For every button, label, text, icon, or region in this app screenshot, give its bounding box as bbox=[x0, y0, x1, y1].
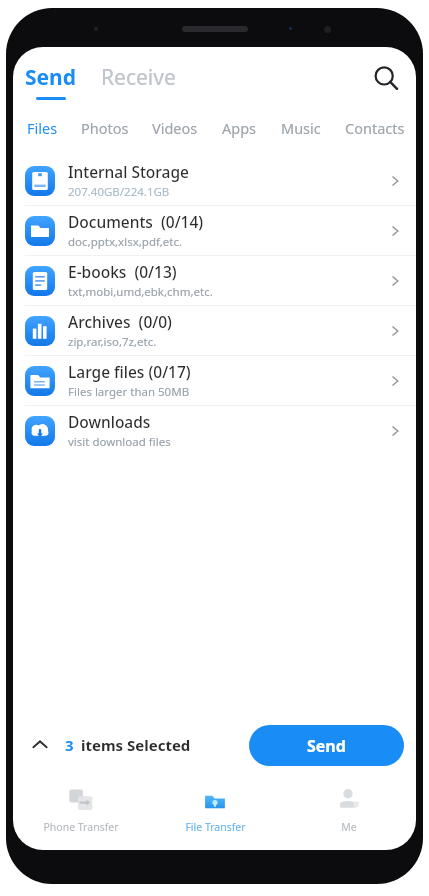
button[interactable]: Send bbox=[21, 61, 81, 102]
button[interactable]: Collapse bbox=[23, 728, 57, 762]
button[interactable]: Archives (0/0) bbox=[13, 306, 416, 356]
staticText: Me bbox=[341, 820, 357, 834]
staticText: txt,mobi,umd,ebk,chm,etc. bbox=[68, 284, 213, 300]
staticText: File Transfer bbox=[185, 820, 246, 834]
staticText: Videos bbox=[152, 118, 198, 138]
staticText: 3 bbox=[65, 735, 74, 755]
button[interactable]: Files bbox=[22, 114, 63, 142]
staticText: doc,pptx,xlsx,pdf,etc. bbox=[68, 234, 183, 250]
staticText: Apps bbox=[222, 118, 257, 138]
staticText: Photos bbox=[81, 118, 129, 138]
staticText: visit download files bbox=[68, 434, 171, 450]
staticText: Downloads bbox=[68, 411, 151, 432]
staticText: Phone Transfer bbox=[43, 820, 119, 834]
staticText: Large files (0/17) bbox=[68, 361, 191, 382]
button[interactable]: Videos bbox=[147, 114, 203, 142]
button[interactable]: Receive bbox=[97, 65, 180, 98]
staticText: Send bbox=[25, 63, 77, 92]
button[interactable]: Internal Storage bbox=[13, 156, 416, 206]
staticText: Receive bbox=[101, 63, 176, 92]
button[interactable]: Send bbox=[249, 725, 404, 766]
button[interactable]: Contacts bbox=[340, 114, 410, 142]
staticText: Files larger than 50MB bbox=[68, 384, 190, 400]
staticText: Internal Storage bbox=[68, 161, 189, 182]
button[interactable]: 3 bbox=[65, 731, 191, 759]
staticText: zip,rar,iso,7z,etc. bbox=[68, 334, 157, 350]
staticText: Documents (0/14) bbox=[68, 211, 204, 232]
button[interactable]: Search bbox=[366, 58, 406, 98]
staticText: 207.40GB/224.1GB bbox=[68, 184, 170, 200]
button[interactable]: Music bbox=[276, 114, 326, 142]
staticText: Music bbox=[281, 118, 321, 138]
staticText: E-books (0/13) bbox=[68, 261, 177, 282]
button[interactable]: File Transfer bbox=[148, 774, 282, 846]
staticText: Files bbox=[27, 118, 58, 138]
button[interactable]: Large files (0/17) bbox=[13, 356, 416, 406]
staticText: Contacts bbox=[345, 118, 405, 138]
button[interactable]: Phone Transfer bbox=[13, 774, 148, 846]
button[interactable]: Me bbox=[282, 774, 416, 846]
button[interactable]: Downloads bbox=[13, 406, 416, 455]
staticText: items Selected bbox=[81, 735, 191, 755]
button[interactable]: E-books (0/13) bbox=[13, 256, 416, 306]
staticText: Archives (0/0) bbox=[68, 311, 172, 332]
button[interactable]: Apps bbox=[217, 114, 262, 142]
button[interactable]: Documents (0/14) bbox=[13, 206, 416, 256]
button[interactable]: Photos bbox=[76, 114, 134, 142]
staticText: Send bbox=[307, 735, 346, 757]
